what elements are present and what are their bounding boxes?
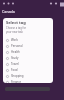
staticText: Choose a tag for your new task bbox=[6, 26, 27, 33]
button[interactable]: Food bbox=[6, 67, 53, 73]
staticText: Shopping bbox=[11, 74, 24, 78]
button[interactable]: Travel bbox=[6, 61, 53, 67]
staticText: Personal bbox=[11, 44, 23, 48]
button[interactable]: Shopping bbox=[6, 73, 53, 79]
button[interactable]: Work bbox=[6, 37, 53, 43]
staticText: Travel bbox=[11, 62, 19, 66]
staticText: Select tag bbox=[6, 20, 26, 25]
staticText: Health bbox=[11, 50, 20, 54]
button[interactable]: Health bbox=[6, 49, 53, 55]
staticText: Work bbox=[11, 38, 18, 42]
button[interactable]: Personal bbox=[6, 43, 53, 49]
staticText: Food bbox=[11, 68, 18, 72]
button[interactable]: Finance bbox=[6, 79, 53, 83]
staticText: Canada bbox=[2, 9, 15, 14]
staticText: Finance bbox=[11, 80, 22, 83]
staticText: Study bbox=[11, 56, 19, 60]
button[interactable]: Study bbox=[6, 55, 53, 61]
